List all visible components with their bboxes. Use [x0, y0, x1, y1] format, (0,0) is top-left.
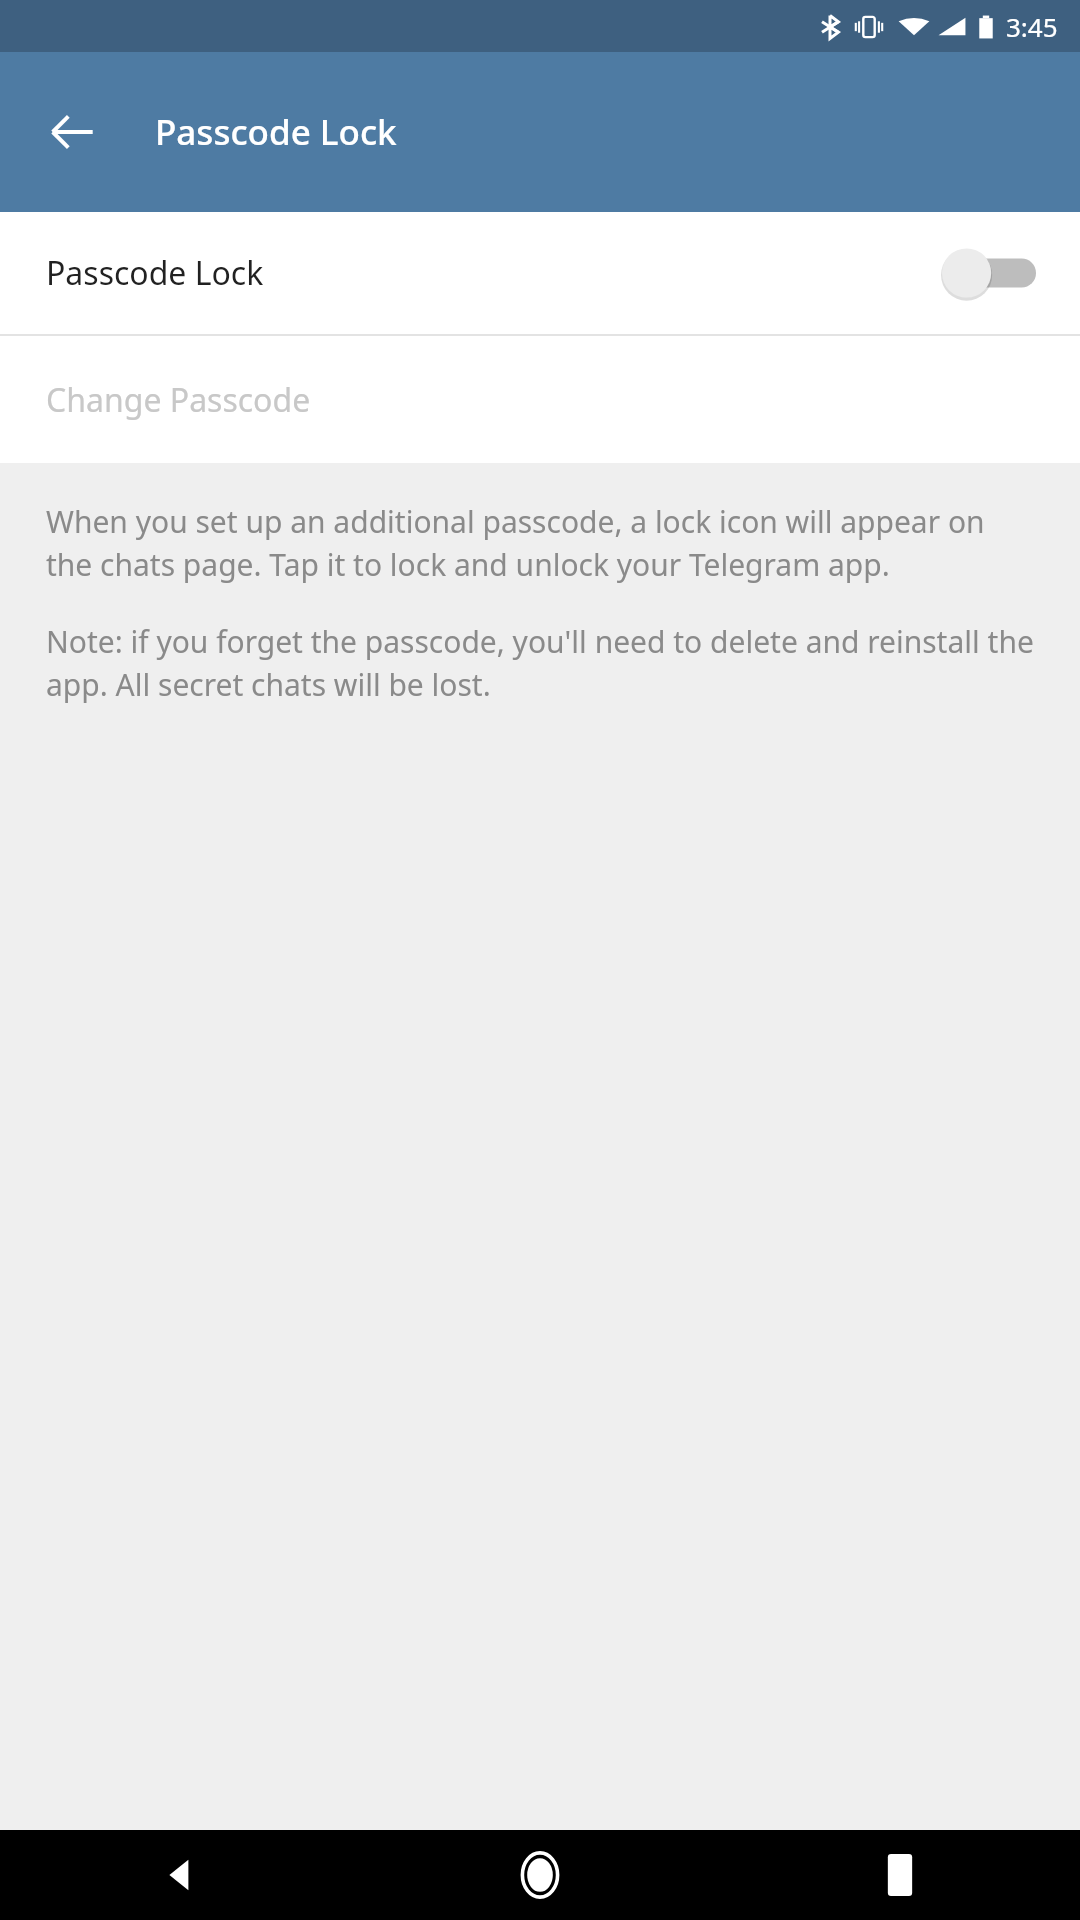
button[interactable]: Passcode Lock [0, 212, 1080, 334]
staticText: 3:45 [1006, 9, 1058, 44]
button[interactable]: Passcode Lock toggle [940, 243, 1040, 303]
button[interactable]: Back [28, 88, 116, 176]
staticText: Passcode Lock [46, 251, 940, 295]
staticText: When you set up an additional passcode, … [46, 501, 1034, 585]
staticText: Passcode Lock [155, 108, 397, 156]
button[interactable]: Recents [720, 1830, 1080, 1920]
button[interactable]: Back [0, 1830, 360, 1920]
staticText: Change Passcode [46, 378, 311, 422]
button[interactable]: Home [360, 1830, 720, 1920]
staticText: Note: if you forget the passcode, you'll… [46, 621, 1034, 705]
button[interactable]: Change Passcode [0, 336, 1080, 463]
